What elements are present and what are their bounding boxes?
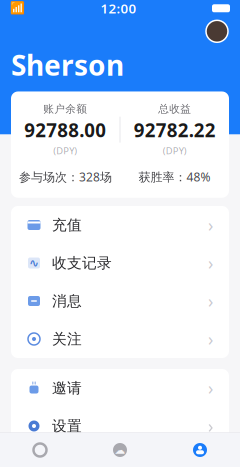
staticText: 📶 (10, 1, 25, 15)
button[interactable]: Profile photo (206, 20, 228, 42)
staticText: 充值 (52, 216, 82, 234)
staticText: 收支记录 (52, 254, 112, 272)
staticText: › (208, 213, 213, 236)
staticText: 邀请 (52, 379, 82, 397)
staticText: › (208, 327, 213, 350)
staticText: (DPY) (53, 144, 77, 157)
staticText: › (208, 289, 213, 312)
staticText: › (208, 251, 213, 274)
staticText: 设置 (52, 417, 82, 435)
staticText: 总收益 (158, 102, 191, 116)
staticText: (DPY) (163, 144, 187, 157)
staticText: › (208, 376, 213, 399)
button[interactable]: 消息 (11, 282, 229, 320)
staticText: 参与场次：328场 (19, 169, 112, 185)
staticText: 92782.22 (134, 118, 216, 142)
staticText: 12:00 (100, 0, 136, 17)
staticText: 账户余额 (43, 102, 87, 116)
staticText: 关注 (52, 330, 82, 348)
button[interactable]: Discover (80, 433, 160, 467)
button[interactable]: ∿ (11, 244, 229, 282)
staticText: ☁ (114, 444, 125, 456)
button[interactable]: 邀请 (11, 369, 229, 407)
button[interactable]: 充值 (11, 206, 229, 244)
button[interactable]: 设置 (11, 407, 229, 445)
button[interactable]: Profile (160, 433, 240, 467)
staticText: 获胜率：48% (138, 169, 210, 185)
staticText: 92788.00 (24, 118, 106, 142)
staticText: Sherson (11, 46, 124, 83)
staticText: ∿ (29, 256, 39, 270)
button[interactable]: Activity (0, 433, 80, 467)
button[interactable]: 关注 (11, 320, 229, 358)
staticText: › (208, 414, 213, 437)
staticText: 消息 (52, 292, 82, 310)
